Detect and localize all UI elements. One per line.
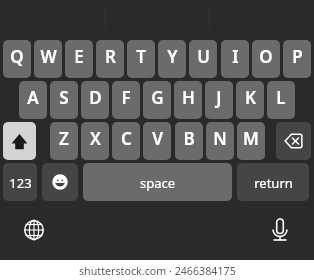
button[interactable]: N — [206, 122, 234, 160]
staticText: F — [121, 86, 131, 109]
button[interactable]: V — [143, 122, 171, 160]
staticText: C — [121, 127, 132, 150]
button[interactable]: H — [174, 81, 202, 119]
button[interactable]: G — [143, 81, 171, 119]
button[interactable]: F — [112, 81, 140, 119]
staticText: return — [254, 174, 293, 192]
button[interactable]: S — [50, 81, 78, 119]
button[interactable]: K — [236, 81, 264, 119]
staticText: B — [183, 127, 195, 150]
button[interactable]: L — [267, 81, 295, 119]
button[interactable]: W — [34, 40, 62, 78]
button[interactable]: Backspace — [276, 122, 311, 160]
staticText: R — [105, 45, 116, 68]
button[interactable]: R — [96, 40, 124, 78]
staticText: V — [152, 127, 163, 150]
staticText: J — [216, 86, 222, 109]
button[interactable]: Voice input — [265, 215, 295, 245]
button[interactable]: Emoji — [42, 163, 78, 201]
button[interactable]: X — [81, 122, 109, 160]
button[interactable]: I — [221, 40, 249, 78]
button[interactable]: D — [81, 81, 109, 119]
button[interactable]: Y — [158, 40, 186, 78]
staticText: G — [151, 86, 164, 109]
button[interactable]: Switch keyboard — [19, 215, 49, 245]
staticText: I — [232, 45, 239, 68]
staticText: Z — [59, 127, 69, 150]
staticText: T — [136, 45, 146, 68]
button[interactable]: Q — [3, 40, 31, 78]
staticText: P — [292, 45, 303, 68]
button[interactable]: Z — [50, 122, 78, 160]
button[interactable]: O — [252, 40, 280, 78]
staticText: Y — [167, 45, 178, 68]
staticText: M — [243, 127, 259, 150]
button[interactable]: P — [283, 40, 311, 78]
staticText: K — [245, 86, 256, 109]
staticText: A — [27, 86, 39, 109]
staticText: space — [140, 174, 176, 192]
staticText: X — [90, 127, 101, 150]
staticText: E — [74, 45, 84, 68]
staticText: H — [182, 86, 195, 109]
staticText: N — [213, 127, 227, 150]
staticText: S — [59, 86, 69, 109]
staticText: 123 — [9, 174, 32, 192]
button[interactable]: U — [189, 40, 217, 78]
button[interactable]: J — [205, 81, 233, 119]
button[interactable]: M — [237, 122, 265, 160]
staticText: U — [197, 45, 210, 68]
button[interactable]: C — [112, 122, 140, 160]
button[interactable]: 123 — [3, 163, 37, 201]
button[interactable]: A — [19, 81, 47, 119]
staticText: Q — [10, 45, 24, 68]
button[interactable]: Shift — [3, 122, 36, 160]
staticText: shutterstock.com · 2466384175 — [79, 264, 236, 279]
staticText: D — [89, 86, 102, 109]
button[interactable]: space — [83, 163, 232, 201]
button[interactable]: T — [127, 40, 155, 78]
button[interactable]: return — [237, 163, 309, 201]
staticText: L — [276, 86, 286, 109]
staticText: O — [259, 45, 273, 68]
staticText: W — [40, 45, 57, 68]
button[interactable]: E — [65, 40, 93, 78]
button[interactable]: B — [175, 122, 203, 160]
